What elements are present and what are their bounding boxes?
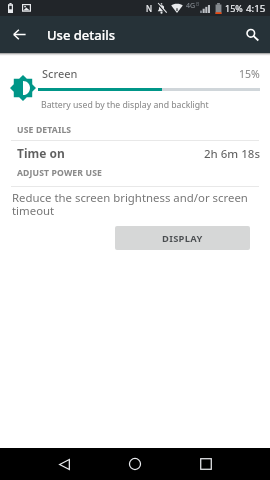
- staticText: Reduce the screen brightness and/or scre…: [12, 190, 252, 218]
- staticText: 4G: [186, 1, 196, 11]
- staticText: 2h 6m 18s: [204, 146, 260, 162]
- staticText: 4:15: [246, 2, 266, 15]
- button[interactable]: Back: [48, 448, 81, 480]
- staticText: Time on: [17, 145, 65, 161]
- staticText: B: [196, 1, 200, 8]
- staticText: Use details: [47, 26, 116, 44]
- button[interactable]: Search: [239, 16, 265, 53]
- button[interactable]: DISPLAY: [115, 226, 250, 250]
- staticText: Battery used by the display and backligh…: [41, 99, 209, 111]
- staticText: 15%: [239, 67, 260, 81]
- button[interactable]: Recent apps: [189, 448, 222, 480]
- button[interactable]: Home: [119, 448, 151, 480]
- staticText: ADJUST POWER USE: [17, 167, 102, 179]
- staticText: USE DETAILS: [17, 124, 72, 136]
- staticText: N: [146, 3, 153, 14]
- button[interactable]: Back: [0, 16, 37, 53]
- staticText: DISPLAY: [162, 232, 203, 245]
- staticText: Screen: [42, 66, 78, 81]
- staticText: 15%: [225, 2, 243, 14]
